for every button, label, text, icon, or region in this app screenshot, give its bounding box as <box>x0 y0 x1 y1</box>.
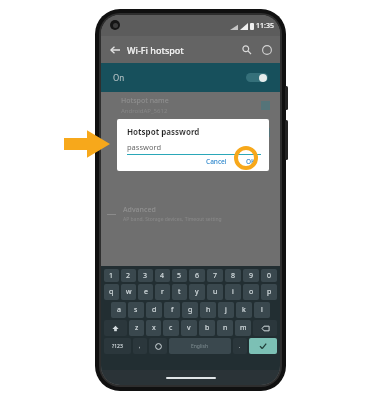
staticText: z <box>135 323 139 333</box>
button[interactable]: . <box>233 338 247 354</box>
button[interactable]: v <box>181 320 197 336</box>
button[interactable]: Advanced <box>101 202 280 226</box>
staticText: Hotspot name <box>121 96 169 106</box>
staticText: b <box>205 323 210 333</box>
button[interactable]: Hotspot name <box>101 92 280 119</box>
button[interactable]: 4 <box>155 269 170 282</box>
button[interactable]: Shift <box>104 320 127 336</box>
button[interactable]: m <box>235 320 251 336</box>
button[interactable]: a <box>111 302 126 318</box>
button[interactable]: 0 <box>261 269 277 282</box>
button[interactable]: t <box>172 284 187 300</box>
button[interactable]: i <box>225 284 241 300</box>
button[interactable]: b <box>199 320 215 336</box>
button[interactable]: c <box>163 320 179 336</box>
staticText: m <box>240 323 247 333</box>
staticText: 1 <box>109 271 114 281</box>
staticText: AP band, Storage devices, Timeout settin… <box>123 216 222 223</box>
staticText: 0 <box>267 271 272 281</box>
staticText: h <box>206 305 211 315</box>
staticText: p <box>267 287 272 297</box>
button[interactable]: Back <box>106 41 123 58</box>
button[interactable]: 8 <box>225 269 241 282</box>
button[interactable]: l <box>254 302 270 318</box>
staticText: . <box>239 343 241 350</box>
button[interactable]: 1 <box>104 269 119 282</box>
button[interactable]: 7 <box>207 269 223 282</box>
staticText: v <box>187 323 191 333</box>
button[interactable]: Cancel <box>202 155 231 166</box>
button[interactable]: On <box>101 63 280 92</box>
button[interactable]: u <box>207 284 223 300</box>
staticText: Hide my device <box>121 128 172 138</box>
staticText: x <box>152 323 156 333</box>
button[interactable]: q <box>104 284 119 300</box>
staticText: o <box>249 287 254 297</box>
staticText: 4 <box>160 271 165 281</box>
staticText: ?123 <box>112 343 123 350</box>
button[interactable]: r <box>155 284 170 300</box>
staticText: i <box>232 287 234 297</box>
staticText: e <box>144 287 148 297</box>
button[interactable]: e <box>138 284 153 300</box>
staticText: 5 <box>177 271 182 281</box>
button[interactable]: Search <box>238 41 255 58</box>
button[interactable]: English <box>169 338 231 354</box>
button[interactable]: n <box>217 320 233 336</box>
staticText: AndroidAP_5612 <box>121 107 168 115</box>
staticText: t <box>178 287 181 297</box>
button[interactable]: f <box>164 302 180 318</box>
staticText: k <box>242 305 246 315</box>
staticText: password <box>127 142 161 152</box>
staticText: c <box>169 323 173 333</box>
button[interactable]: OK <box>241 155 261 166</box>
staticText: 9 <box>249 271 254 281</box>
staticText: 7 <box>213 271 218 281</box>
button[interactable]: z <box>129 320 144 336</box>
button[interactable]: 9 <box>243 269 259 282</box>
button[interactable]: 3 <box>138 269 153 282</box>
staticText: 6 <box>195 271 200 281</box>
staticText: 11:35 <box>256 21 274 31</box>
button[interactable]: o <box>243 284 259 300</box>
staticText: f <box>171 305 174 315</box>
staticText: g <box>188 305 193 315</box>
staticText: j <box>225 305 227 315</box>
button[interactable]: x <box>146 320 161 336</box>
button[interactable]: 6 <box>189 269 205 282</box>
button[interactable]: 2 <box>121 269 136 282</box>
button[interactable]: g <box>182 302 198 318</box>
button[interactable]: j <box>218 302 234 318</box>
staticText: Cancel <box>206 157 227 164</box>
button[interactable]: Backspace <box>253 320 277 336</box>
button[interactable]: y <box>189 284 205 300</box>
staticText: OK <box>246 157 256 164</box>
button[interactable]: w <box>121 284 136 300</box>
button[interactable]: Enter <box>249 338 277 354</box>
button[interactable]: Help <box>258 41 275 58</box>
staticText: q <box>109 287 114 297</box>
button[interactable]: h <box>200 302 216 318</box>
staticText: a <box>117 305 121 315</box>
staticText: w <box>126 287 132 297</box>
staticText: s <box>134 305 138 315</box>
staticText: 3 <box>143 271 148 281</box>
button[interactable]: , <box>133 338 147 354</box>
button[interactable]: d <box>146 302 162 318</box>
button[interactable]: Emoji <box>149 338 167 354</box>
staticText: n <box>223 323 228 333</box>
staticText: l <box>261 305 263 315</box>
staticText: y <box>195 287 199 297</box>
button[interactable]: ?123 <box>104 338 131 354</box>
button[interactable]: 5 <box>172 269 187 282</box>
button[interactable]: Hide my device <box>101 119 280 146</box>
staticText: 8 <box>231 271 236 281</box>
staticText: d <box>152 305 157 315</box>
button[interactable]: p <box>261 284 277 300</box>
staticText: On <box>113 72 125 83</box>
staticText: 2 <box>126 271 131 281</box>
staticText: u <box>213 287 218 297</box>
button[interactable]: s <box>128 302 144 318</box>
button[interactable]: k <box>236 302 252 318</box>
staticText: English <box>191 343 209 350</box>
